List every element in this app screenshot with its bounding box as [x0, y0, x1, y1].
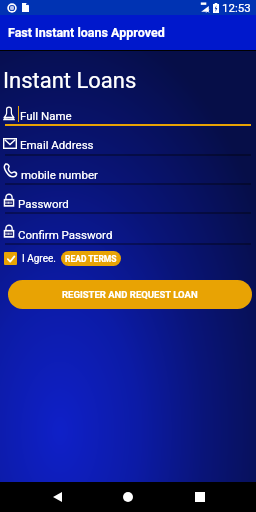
button[interactable]: Home: [113, 482, 143, 512]
button[interactable]: Full Name: [0, 95, 256, 126]
staticText: READ TERMS: [65, 254, 117, 264]
staticText: Confirm Password: [18, 228, 113, 241]
staticText: Instant Loans: [3, 68, 137, 94]
button[interactable]: Confirm Password: [0, 214, 256, 245]
staticText: I Agree.: [22, 253, 56, 265]
staticText: Password: [18, 197, 69, 210]
button[interactable]: I Agree checkbox: [4, 252, 17, 265]
button[interactable]: Recent apps: [185, 482, 215, 512]
staticText: mobile number: [21, 168, 98, 181]
button[interactable]: Email Address: [0, 126, 256, 155]
staticText: Full Name: [20, 109, 72, 122]
button[interactable]: mobile number: [0, 156, 256, 185]
button[interactable]: READ TERMS: [61, 251, 121, 266]
staticText: Email Address: [20, 138, 94, 151]
staticText: REGISTER AND REQUEST LOAN: [62, 289, 198, 300]
button[interactable]: Back: [42, 482, 72, 512]
button[interactable]: Fast Instant loans Approved: [0, 15, 256, 50]
button[interactable]: REGISTER AND REQUEST LOAN: [8, 280, 252, 309]
button[interactable]: Password: [0, 185, 256, 214]
staticText: Fast Instant loans Approved: [8, 25, 165, 40]
staticText: 12:53: [222, 1, 251, 14]
